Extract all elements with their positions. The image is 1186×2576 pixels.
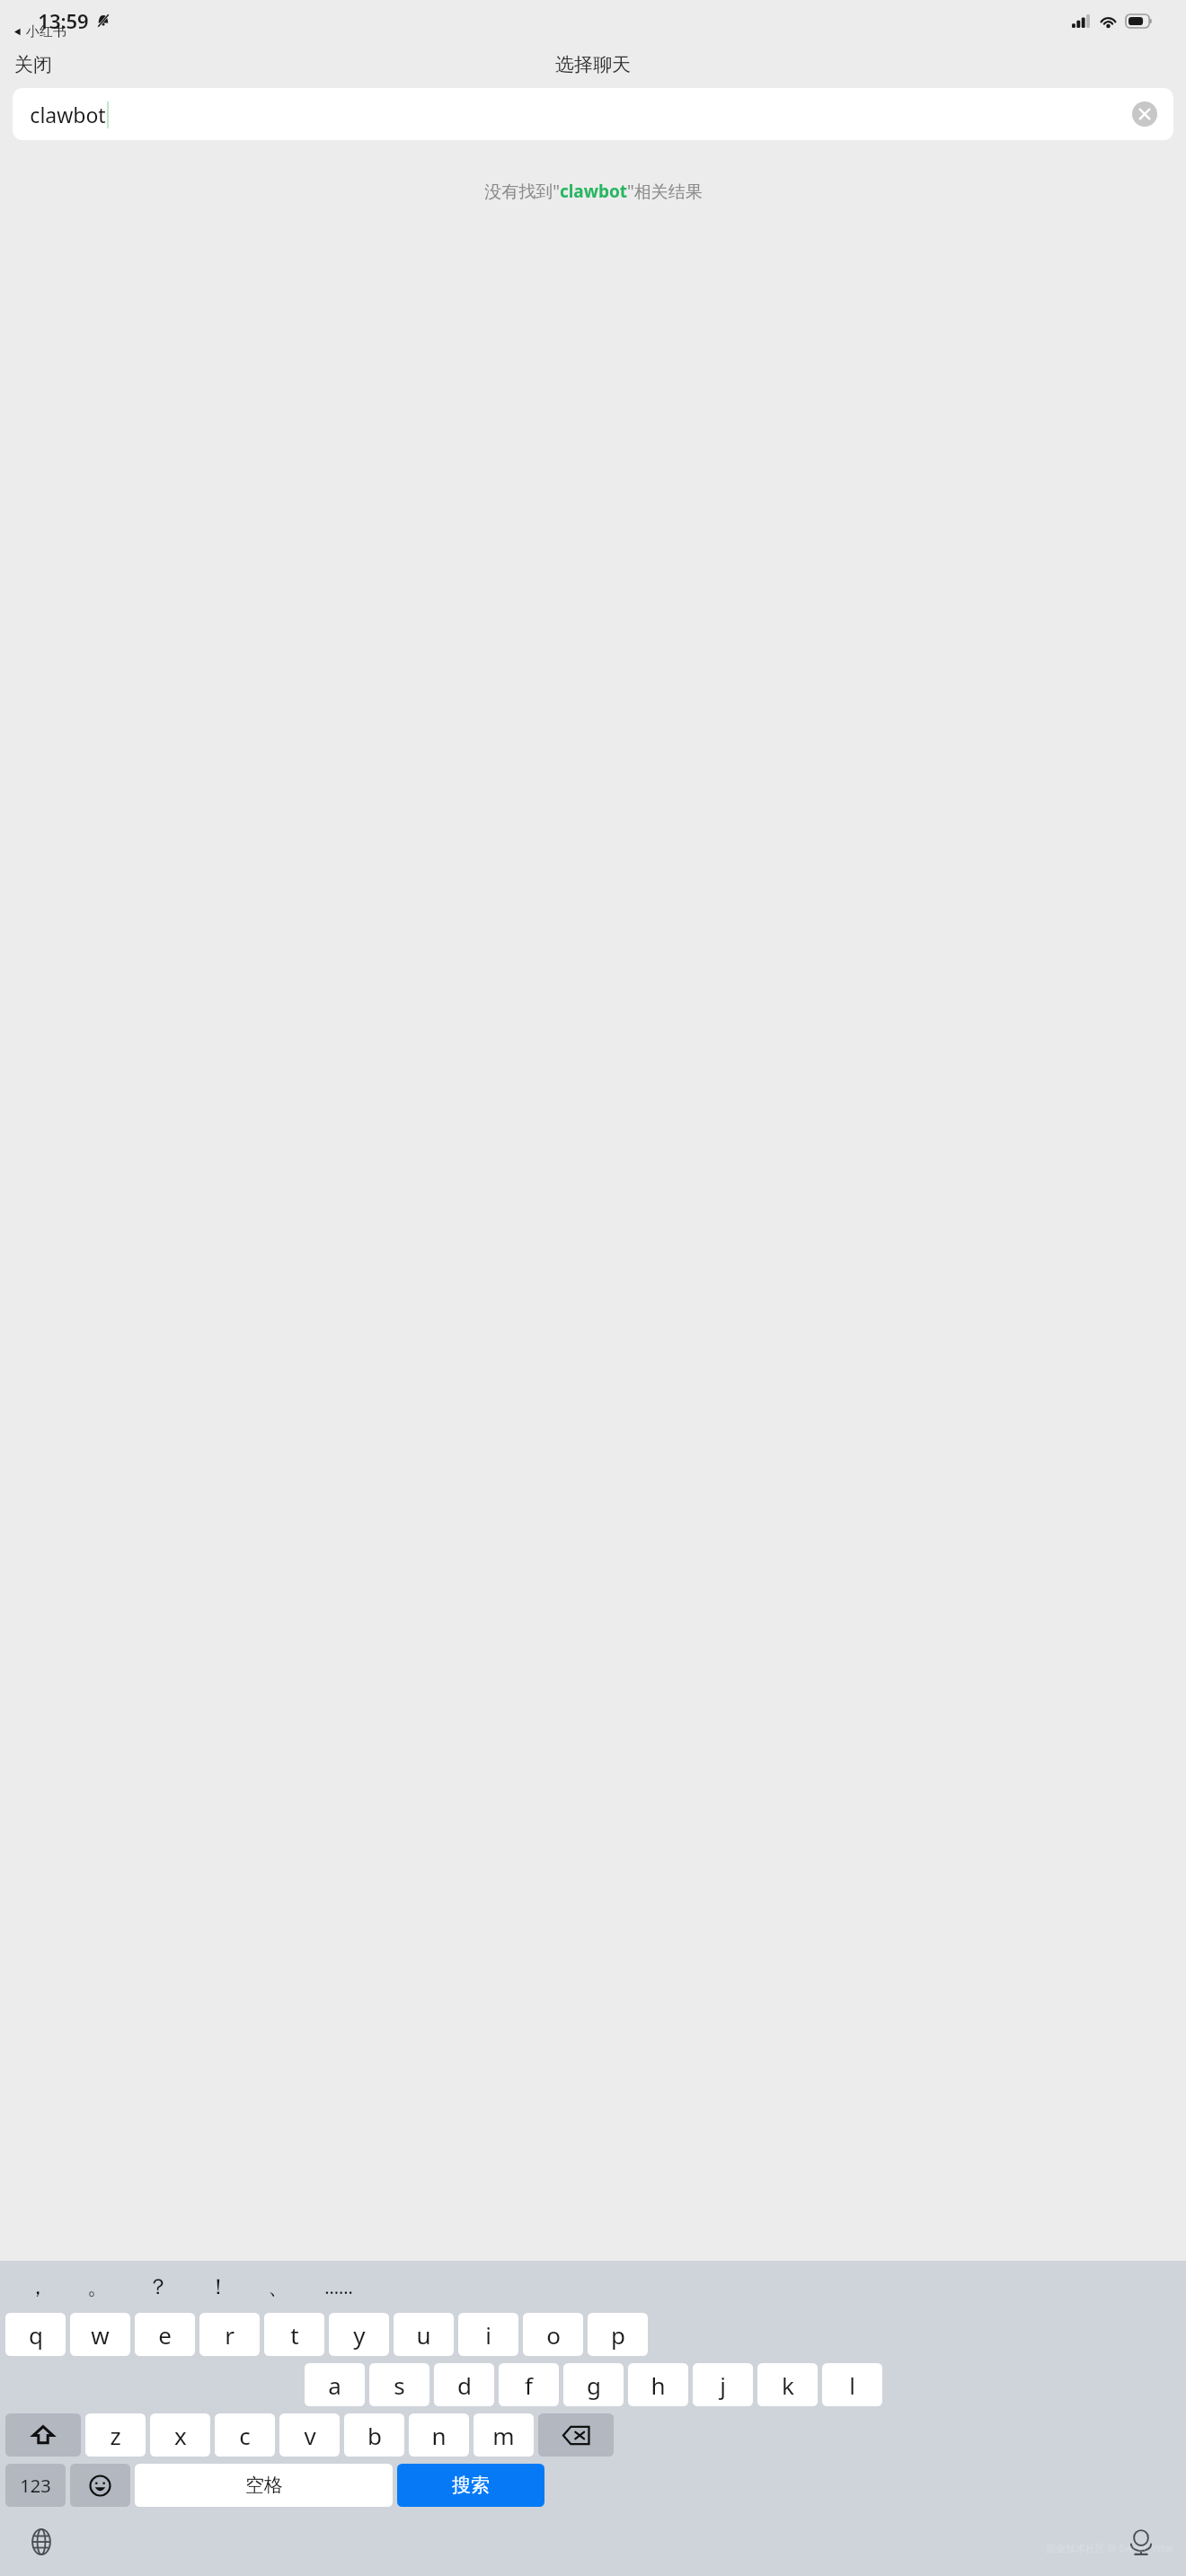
button[interactable]: 选择聊天 — [544, 48, 642, 82]
staticText: f — [525, 2369, 533, 2401]
button[interactable]: ！ — [188, 2261, 248, 2313]
button[interactable]: Emoji — [70, 2464, 130, 2508]
button[interactable]: z — [85, 2413, 146, 2457]
button[interactable]: h — [628, 2363, 688, 2407]
button[interactable]: m — [474, 2413, 534, 2457]
staticText: 没有找到"clawbot"相关结果 — [484, 180, 703, 203]
button[interactable]: i — [458, 2313, 518, 2357]
button[interactable]: t — [264, 2313, 324, 2357]
button[interactable]: ？ — [128, 2261, 188, 2313]
staticText: q — [29, 2319, 43, 2351]
staticText: s — [394, 2369, 405, 2401]
button[interactable]: clawbot — [13, 88, 1173, 140]
button[interactable]: ， — [7, 2261, 67, 2313]
staticText: n — [431, 2420, 447, 2451]
staticText: e — [158, 2319, 172, 2351]
button[interactable]: o — [523, 2313, 583, 2357]
button[interactable]: q — [5, 2313, 66, 2357]
staticText: …… — [324, 2275, 353, 2299]
staticText: u — [416, 2319, 431, 2351]
staticText: h — [651, 2369, 666, 2401]
button[interactable]: Backspace — [538, 2413, 614, 2457]
staticText: d — [457, 2369, 472, 2401]
staticText: 123 — [20, 2474, 51, 2498]
staticText: 选择聊天 — [555, 53, 631, 76]
staticText: m — [492, 2420, 515, 2451]
button[interactable]: y — [329, 2313, 389, 2357]
button[interactable]: c — [215, 2413, 275, 2457]
button[interactable]: s — [369, 2363, 429, 2407]
staticText: ！ — [208, 2273, 229, 2300]
button[interactable]: w — [70, 2313, 130, 2357]
staticText: clawbot — [30, 101, 106, 128]
staticText: 搜索 — [452, 2474, 490, 2497]
staticText: p — [611, 2319, 625, 2351]
staticText: z — [110, 2420, 121, 2451]
staticText: 、 — [268, 2273, 289, 2300]
button[interactable]: Switch keyboard — [20, 2520, 63, 2563]
staticText: t — [290, 2319, 299, 2351]
button[interactable]: d — [434, 2363, 494, 2407]
staticText: 空格 — [245, 2474, 283, 2497]
button[interactable]: x — [150, 2413, 210, 2457]
button[interactable]: b — [344, 2413, 404, 2457]
button[interactable]: …… — [308, 2261, 368, 2313]
staticText: b — [367, 2420, 382, 2451]
button[interactable]: 。 — [67, 2261, 128, 2313]
button[interactable]: 、 — [248, 2261, 308, 2313]
staticText: 。 — [87, 2273, 109, 2300]
staticText: j — [720, 2369, 726, 2401]
staticText: 13:59 — [38, 7, 89, 34]
button[interactable]: g — [563, 2363, 624, 2407]
button[interactable]: e — [135, 2313, 195, 2357]
button[interactable]: 空格 — [135, 2464, 393, 2508]
button[interactable]: k — [757, 2363, 818, 2407]
staticText: a — [328, 2369, 341, 2401]
staticText: 关闭 — [14, 53, 52, 76]
staticText: k — [782, 2369, 794, 2401]
staticText: l — [849, 2369, 855, 2401]
button[interactable]: n — [409, 2413, 469, 2457]
staticText: g — [587, 2369, 601, 2401]
staticText: x — [174, 2420, 187, 2451]
button[interactable]: Clear text — [1132, 101, 1157, 127]
staticText: 小红书 — [26, 23, 66, 40]
button[interactable]: j — [693, 2363, 753, 2407]
button[interactable]: p — [588, 2313, 648, 2357]
staticText: i — [485, 2319, 491, 2351]
staticText: y — [353, 2319, 366, 2351]
button[interactable]: a — [305, 2363, 365, 2407]
button[interactable]: r — [199, 2313, 260, 2357]
staticText: ， — [27, 2273, 49, 2300]
button[interactable]: Voice input — [1120, 2520, 1163, 2563]
staticText: w — [91, 2319, 110, 2351]
button[interactable]: v — [279, 2413, 340, 2457]
staticText: o — [546, 2319, 561, 2351]
button[interactable]: 搜索 — [397, 2464, 544, 2508]
button[interactable]: l — [822, 2363, 882, 2407]
staticText: v — [304, 2420, 316, 2451]
staticText: ？ — [147, 2273, 169, 2300]
button[interactable]: u — [394, 2313, 454, 2357]
staticText: r — [225, 2319, 235, 2351]
button[interactable]: Shift — [5, 2413, 81, 2457]
staticText: c — [239, 2420, 251, 2451]
staticText: 掘金技术社区 @ Sweet_Ystar — [1046, 2541, 1175, 2554]
button[interactable]: 123 — [5, 2464, 66, 2508]
button[interactable]: f — [499, 2363, 559, 2407]
button[interactable]: 关闭 — [0, 48, 66, 82]
